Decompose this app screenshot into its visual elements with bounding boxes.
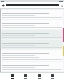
button[interactable]: Profile [50,73,54,79]
button[interactable] [1,30,63,39]
button[interactable] [6,4,59,6]
button[interactable]: Search [23,73,27,79]
button[interactable] [1,50,63,61]
button[interactable]: Back [1,3,5,7]
button[interactable] [1,40,63,49]
button[interactable] [1,62,63,71]
button[interactable]: Library [37,73,41,79]
button[interactable]: More options [60,4,63,7]
button[interactable] [1,10,63,19]
button[interactable] [1,20,63,29]
button[interactable]: Home [10,73,14,79]
